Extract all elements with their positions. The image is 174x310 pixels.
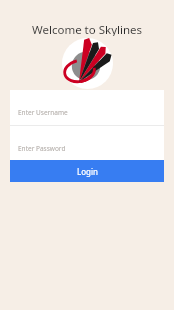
staticText: Login xyxy=(77,166,98,177)
staticText: Welcome to Skylines xyxy=(32,22,143,36)
staticText: Enter Password xyxy=(18,144,66,153)
button[interactable]: Login xyxy=(10,160,164,182)
staticText: Enter Username xyxy=(18,108,68,117)
button[interactable]: Enter Password xyxy=(10,126,164,160)
other: Skylines logo xyxy=(62,38,113,89)
button[interactable]: Enter Username xyxy=(10,90,164,125)
